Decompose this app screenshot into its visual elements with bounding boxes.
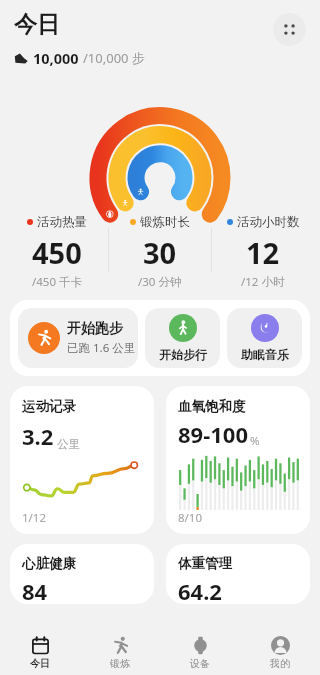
- button[interactable]: 活动小时数: [212, 214, 314, 290]
- staticText: %: [250, 433, 260, 449]
- button[interactable]: 心脏健康: [10, 544, 154, 604]
- button[interactable]: 体重管理: [166, 544, 310, 604]
- staticText: 我的: [270, 657, 290, 670]
- staticText: 心脏健康: [22, 555, 76, 572]
- staticText: 锻炼时长: [140, 214, 190, 230]
- staticText: 开始步行: [159, 347, 207, 362]
- staticText: 活动热量: [37, 214, 87, 230]
- staticText: 锻炼: [110, 657, 130, 670]
- button[interactable]: 今日: [0, 630, 80, 675]
- staticText: 今日: [30, 657, 50, 670]
- button[interactable]: 我的: [240, 630, 320, 675]
- button[interactable]: 助眠音乐: [227, 308, 302, 368]
- staticText: 设备: [190, 657, 210, 670]
- staticText: 1/12: [22, 510, 47, 526]
- button[interactable]: 运动记录: [10, 386, 154, 534]
- button[interactable]: 开始跑步: [18, 308, 138, 368]
- staticText: 运动记录: [22, 398, 76, 415]
- staticText: /450 千卡: [32, 274, 83, 290]
- button[interactable]: 血氧饱和度: [166, 386, 310, 534]
- button[interactable]: 锻炼时长: [109, 214, 211, 290]
- button[interactable]: 活动热量: [6, 214, 108, 290]
- staticText: 12: [246, 233, 280, 272]
- staticText: 助眠音乐: [241, 347, 289, 362]
- button[interactable]: 设备: [160, 630, 240, 675]
- button[interactable]: More options: [273, 13, 306, 46]
- staticText: 活动小时数: [237, 214, 300, 230]
- staticText: /30 分钟: [138, 274, 182, 290]
- staticText: 450: [32, 233, 82, 272]
- staticText: 已跑 1.6 公里: [67, 340, 136, 356]
- staticText: 血氧饱和度: [178, 398, 246, 415]
- staticText: 体重管理: [178, 555, 232, 572]
- staticText: /10,000 步: [83, 49, 145, 67]
- staticText: 开始跑步: [67, 320, 123, 338]
- staticText: 84: [22, 576, 48, 604]
- staticText: /12 小时: [241, 274, 285, 290]
- button[interactable]: 锻炼: [80, 630, 160, 675]
- staticText: 89-100: [178, 419, 248, 449]
- staticText: 3.2: [22, 421, 54, 451]
- staticText: 64.2: [178, 576, 222, 604]
- staticText: 公里: [57, 437, 80, 451]
- staticText: 10,000: [33, 48, 79, 68]
- staticText: 30: [143, 233, 177, 272]
- button[interactable]: 开始步行: [145, 308, 220, 368]
- staticText: 8/10: [178, 510, 203, 526]
- staticText: 今日: [14, 10, 60, 39]
